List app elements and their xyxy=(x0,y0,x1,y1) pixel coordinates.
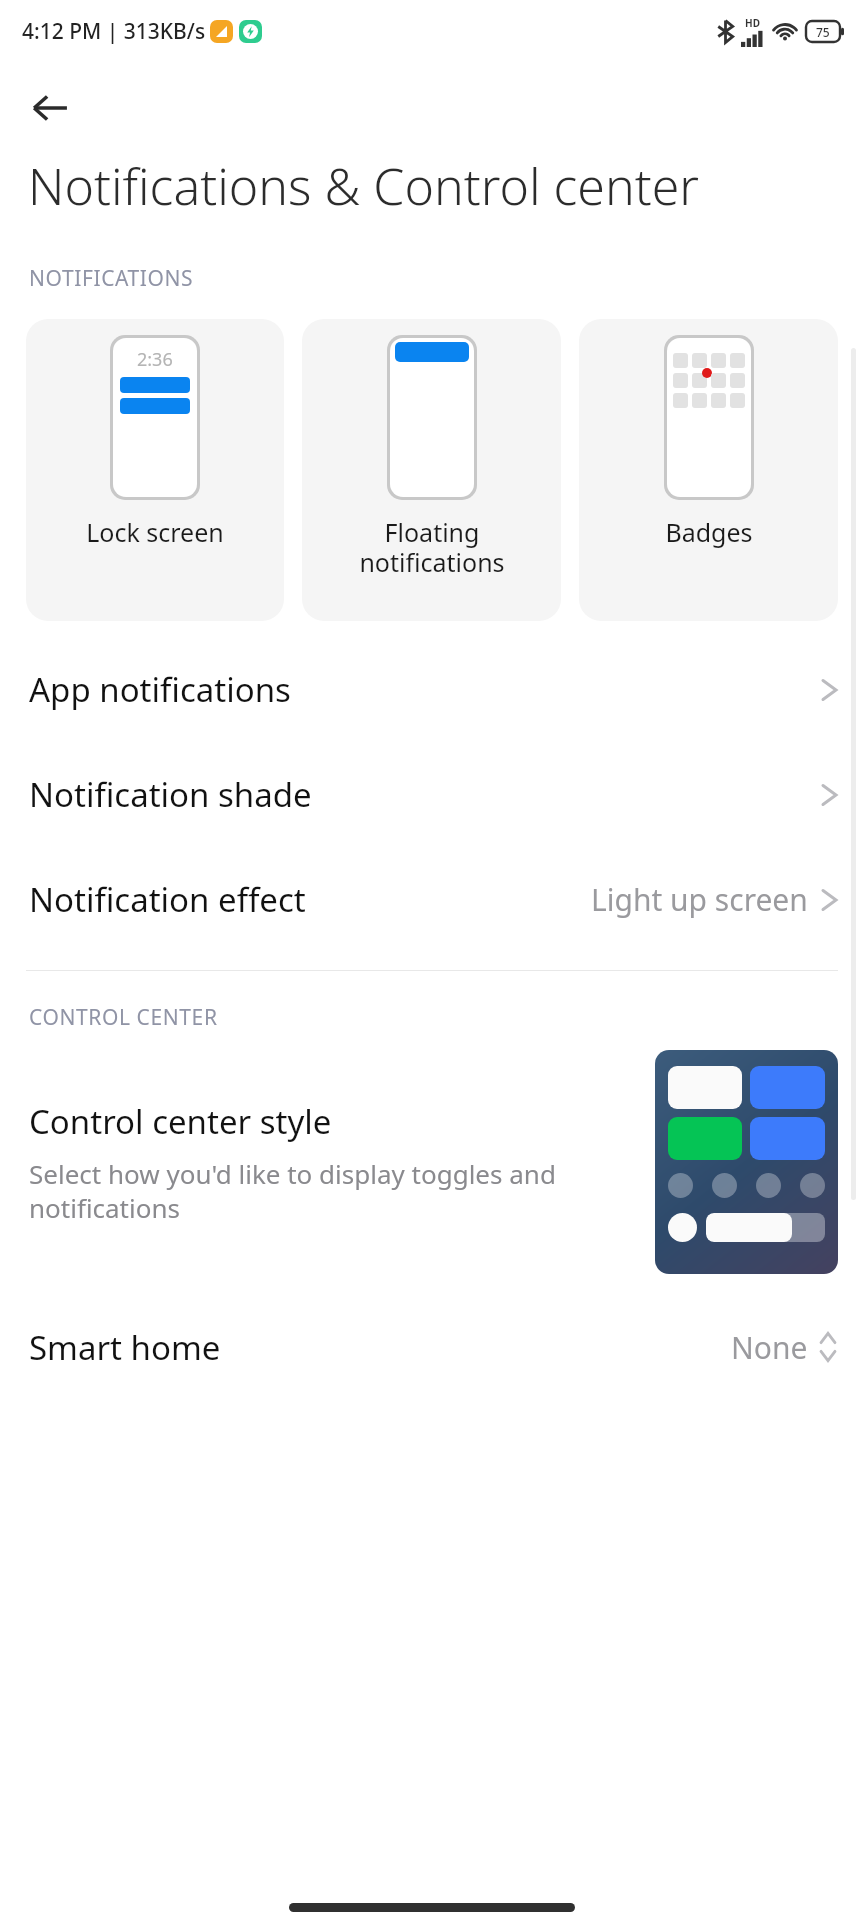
button[interactable]: Back xyxy=(20,78,80,138)
staticText: None xyxy=(731,1327,808,1368)
staticText: 75 xyxy=(816,24,830,40)
staticText: Lock screen xyxy=(86,515,224,549)
staticText: Smart home xyxy=(29,1325,221,1370)
staticText: NOTIFICATIONS xyxy=(29,264,194,293)
staticText: Light up screen xyxy=(591,879,808,920)
staticText: Notifications & Control center xyxy=(28,152,699,220)
staticText: Badges xyxy=(665,515,753,549)
button[interactable]: Control center style xyxy=(0,1032,864,1292)
button[interactable]: App notifications xyxy=(0,637,864,742)
button[interactable]: Badges xyxy=(579,319,838,621)
staticText: Notification effect xyxy=(29,877,306,922)
button[interactable]: Notification effect xyxy=(0,847,864,952)
staticText: Control center style xyxy=(29,1099,332,1144)
button[interactable]: Smart home xyxy=(0,1292,864,1402)
staticText: Floating notifications xyxy=(359,515,505,580)
staticText: CONTROL CENTER xyxy=(29,1003,218,1032)
button[interactable]: 2:36 xyxy=(26,319,284,621)
staticText: Notification shade xyxy=(29,772,312,817)
staticText: 2:36 xyxy=(137,347,173,372)
button[interactable]: Notification shade xyxy=(0,742,864,847)
staticText: Select how you'd like to display toggles… xyxy=(29,1156,633,1226)
staticText: HD xyxy=(745,16,760,30)
staticText: 4:12 PM | 313KB/s xyxy=(22,17,206,46)
button[interactable]: Floating notifications xyxy=(302,319,561,621)
staticText: App notifications xyxy=(29,667,291,712)
